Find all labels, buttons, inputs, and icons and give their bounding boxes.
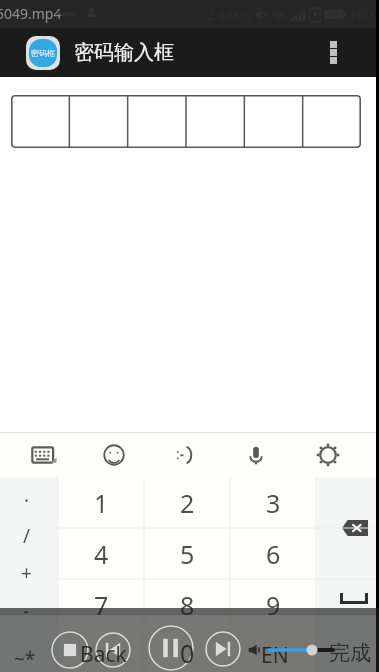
button[interactable] (58, 630, 144, 672)
button[interactable]: 9 (230, 579, 316, 630)
staticText: 2 (180, 486, 195, 520)
staticText: 8 (180, 588, 195, 622)
button[interactable]: 8 (144, 579, 230, 630)
staticText: 5 (180, 537, 195, 571)
button[interactable] (230, 630, 316, 672)
button[interactable]: - (0, 593, 53, 629)
staticText: · (24, 488, 30, 514)
button[interactable]: 3 (230, 477, 316, 528)
button[interactable]: 1 (58, 477, 144, 528)
staticText: 1 (94, 486, 109, 520)
staticText: 7 (94, 588, 109, 622)
staticText: 3 (266, 486, 281, 520)
button[interactable]: key (92, 432, 136, 477)
staticText: EN (261, 641, 289, 670)
button[interactable]: · (0, 483, 53, 519)
button[interactable]: 完成 (329, 640, 371, 666)
button[interactable]: Space (316, 579, 376, 630)
staticText: 4 (94, 537, 109, 571)
staticText: 密码输入框 (74, 40, 174, 65)
button[interactable]: + (0, 555, 53, 591)
button[interactable] (144, 630, 230, 672)
staticText: / (23, 523, 31, 549)
button[interactable]: 4 (58, 528, 144, 579)
button[interactable]: Previous (95, 632, 131, 668)
button[interactable]: Delete (316, 477, 376, 579)
button[interactable]: Pause (148, 625, 194, 671)
staticText: - (23, 598, 30, 624)
button[interactable]: 6 (230, 528, 316, 579)
staticText: + (21, 560, 32, 586)
staticText: ~* (14, 646, 36, 672)
button[interactable]: / (0, 518, 53, 554)
button[interactable]: Stop (51, 631, 89, 669)
button[interactable]: key (234, 432, 278, 477)
button[interactable]: 2 (144, 477, 230, 528)
button[interactable]: key (162, 432, 206, 477)
staticText: 完成 (329, 640, 371, 666)
button[interactable]: More options (316, 28, 350, 77)
staticText: 6 (266, 537, 281, 571)
staticText: 密码框 (31, 48, 55, 58)
staticText: 0 (180, 636, 195, 670)
staticText: 9 (266, 588, 281, 622)
button[interactable]: key (306, 432, 350, 477)
staticText: 5049.mp4 (0, 4, 62, 23)
staticText: Back (80, 640, 127, 669)
button[interactable]: 5 (144, 528, 230, 579)
button[interactable]: Next (205, 631, 241, 667)
button[interactable]: key (22, 432, 66, 477)
button[interactable]: 7 (58, 579, 144, 630)
